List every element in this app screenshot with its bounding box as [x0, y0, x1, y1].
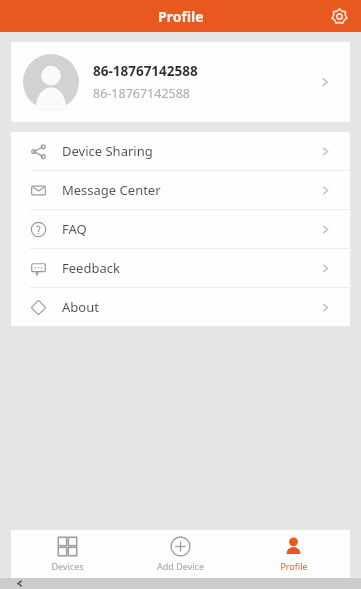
staticText: Devices	[51, 560, 84, 572]
button[interactable]: Message Center	[11, 171, 350, 209]
button[interactable]: Profile	[237, 530, 350, 578]
button[interactable]: Settings	[325, 2, 353, 30]
button[interactable]: FAQ	[11, 210, 350, 248]
staticText: Message Center	[62, 181, 319, 199]
button[interactable]: Add Device	[124, 530, 237, 578]
button[interactable]: Devices	[11, 530, 124, 578]
staticText: Feedback	[62, 259, 319, 277]
staticText: Profile	[280, 560, 308, 572]
staticText: 86-18767142588	[93, 62, 198, 80]
staticText: Add Device	[157, 560, 204, 572]
button[interactable]: 86-18767142588	[11, 42, 350, 122]
staticText: Device Sharing	[62, 142, 319, 160]
button[interactable]: About	[11, 288, 350, 326]
staticText: Profile	[158, 7, 204, 26]
staticText: About	[62, 298, 319, 316]
staticText: FAQ	[62, 220, 319, 238]
button[interactable]: Feedback	[11, 249, 350, 287]
button[interactable]: Device Sharing	[11, 132, 350, 170]
staticText: 86-18767142588	[93, 85, 190, 102]
